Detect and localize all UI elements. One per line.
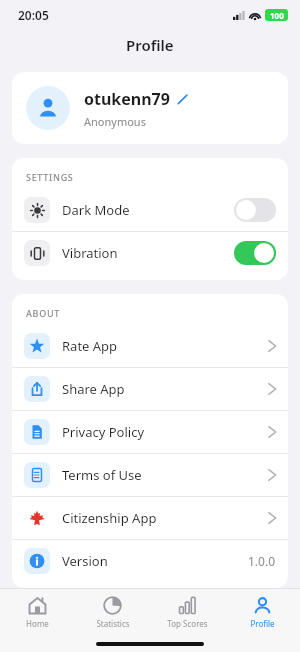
button[interactable]: Statistics: [75, 589, 150, 635]
button[interactable]: Vibration: [12, 232, 288, 274]
staticText: Profile: [126, 35, 174, 55]
staticText: 100: [270, 10, 284, 21]
staticText: Statistics: [96, 618, 130, 629]
button[interactable]: Profile: [225, 589, 300, 635]
staticText: 1.0.0: [248, 553, 276, 569]
button[interactable]: Dark Mode: [12, 189, 288, 231]
staticText: Home: [26, 618, 49, 629]
staticText: otukenn79: [84, 88, 170, 110]
button[interactable]: Version: [12, 540, 288, 582]
button[interactable]: Edit name: [177, 94, 188, 105]
staticText: 20:05: [18, 7, 49, 23]
staticText: SETTINGS: [26, 171, 74, 183]
staticText: Vibration: [62, 244, 118, 262]
staticText: ABOUT: [26, 307, 61, 319]
staticText: Terms of Use: [62, 466, 142, 484]
staticText: Profile: [250, 618, 275, 629]
button[interactable]: Share App: [12, 368, 288, 410]
staticText: Dark Mode: [62, 201, 130, 219]
staticText: Privacy Policy: [62, 423, 145, 441]
button[interactable]: Citizenship App: [12, 497, 288, 539]
button[interactable]: otukenn79: [12, 72, 288, 144]
button[interactable]: Rate App: [12, 325, 288, 367]
staticText: Share App: [62, 380, 125, 398]
button[interactable]: Privacy Policy: [12, 411, 288, 453]
button[interactable]: Home: [0, 589, 75, 635]
staticText: Top Scores: [167, 618, 208, 629]
staticText: Rate App: [62, 337, 118, 355]
button[interactable]: Terms of Use: [12, 454, 288, 496]
staticText: Anonymous: [84, 114, 146, 129]
button[interactable]: Top Scores: [150, 589, 225, 635]
staticText: Version: [62, 552, 108, 570]
staticText: Citizenship App: [62, 509, 157, 527]
